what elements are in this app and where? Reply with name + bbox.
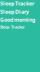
staticText: Sleep Tracker <box>0 0 34 7</box>
staticText: Good morning <box>0 16 35 23</box>
staticText: Sleep Diary <box>0 8 29 15</box>
staticText: Sleep Tracker <box>0 24 25 29</box>
